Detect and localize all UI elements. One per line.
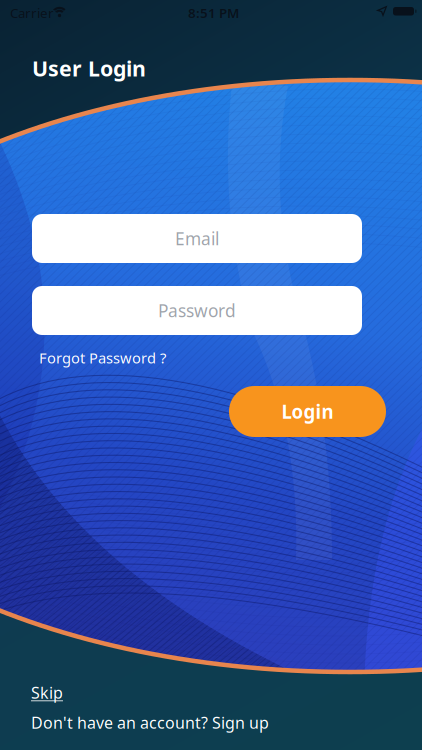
staticText: Password xyxy=(158,299,236,322)
staticText: 8:51 PM xyxy=(188,4,239,22)
staticText: Carrier xyxy=(10,4,54,22)
staticText: Login xyxy=(281,399,333,424)
staticText: Don't have an account? Sign up xyxy=(31,712,269,733)
staticText: Forgot Password ? xyxy=(39,348,166,367)
button[interactable]: Login xyxy=(229,386,386,437)
staticText: Skip xyxy=(31,682,63,703)
staticText: User Login xyxy=(32,54,146,82)
button[interactable]: Forgot Password ? xyxy=(39,348,166,367)
staticText: Email xyxy=(175,227,219,250)
button[interactable]: Email xyxy=(32,214,362,263)
button[interactable]: Password xyxy=(32,286,362,335)
button[interactable]: Don't have an account? Sign up xyxy=(31,712,269,733)
button[interactable]: Skip xyxy=(31,682,63,703)
